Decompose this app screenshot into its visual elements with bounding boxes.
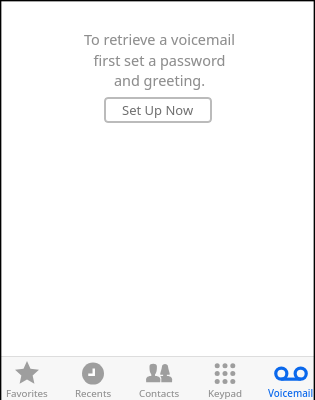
staticText: Set Up Now [122,101,194,119]
staticText: Voicemail [268,387,314,400]
button[interactable]: Set Up Now [104,97,212,123]
button[interactable]: Voicemail [260,357,315,400]
staticText: Favorites [6,387,48,400]
staticText: Keypad [208,387,242,400]
button[interactable]: Keypad [194,357,256,400]
staticText: To retrieve a voicemail first set a pass… [2,30,315,90]
button[interactable]: Recents [62,357,124,400]
button[interactable]: Contacts [128,357,190,400]
staticText: Recents [75,387,112,400]
staticText: Contacts [139,387,180,400]
button[interactable]: Favorites [0,357,58,400]
